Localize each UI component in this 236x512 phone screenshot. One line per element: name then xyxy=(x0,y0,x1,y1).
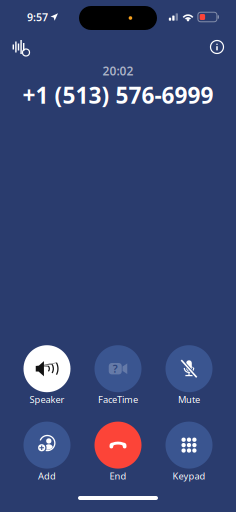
staticText: End xyxy=(109,470,126,482)
staticText: 20:02 xyxy=(102,63,133,79)
button[interactable]: End xyxy=(82,422,153,482)
staticText: FaceTime xyxy=(98,393,138,406)
button[interactable]: Call details xyxy=(204,34,230,60)
staticText: +1 (513) 576-6999 xyxy=(22,80,213,110)
staticText: Mute xyxy=(178,393,200,406)
button[interactable]: Mute xyxy=(153,345,224,406)
staticText: 9:57 xyxy=(27,10,48,24)
button[interactable]: Keypad xyxy=(153,422,224,482)
button[interactable]: Add xyxy=(11,422,82,482)
staticText: Speaker xyxy=(29,393,64,406)
staticText: Keypad xyxy=(172,470,205,482)
staticText: Add xyxy=(38,470,56,482)
button[interactable]: Audio waveform xyxy=(8,34,34,60)
button[interactable]: Speaker xyxy=(11,345,82,406)
staticText: ? xyxy=(113,362,118,376)
button[interactable]: ? xyxy=(82,345,153,406)
